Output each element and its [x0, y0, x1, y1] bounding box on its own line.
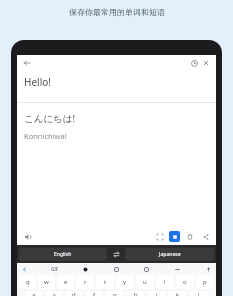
button[interactable]: r	[76, 275, 94, 289]
button[interactable]: English	[19, 248, 107, 261]
button[interactable]: j	[147, 291, 166, 296]
button[interactable]: g	[105, 291, 124, 296]
button[interactable]: i	[156, 275, 174, 289]
button[interactable]: History	[188, 57, 200, 69]
staticText: p	[203, 278, 207, 286]
button[interactable]: Voice input	[204, 265, 213, 274]
button[interactable]: Fullscreen	[153, 230, 166, 243]
staticText: f	[93, 291, 96, 296]
button[interactable]: o	[176, 275, 194, 289]
staticText: h	[134, 291, 138, 296]
staticText: Japanese	[159, 251, 181, 258]
staticText: Hello!	[24, 75, 51, 89]
staticText: 保存你最常用的单词和短语	[69, 7, 165, 17]
staticText: q	[26, 278, 30, 286]
button[interactable]: u	[136, 275, 154, 289]
button[interactable]: w	[38, 275, 55, 289]
button[interactable]: Share	[199, 230, 212, 243]
button[interactable]: Japanese	[125, 248, 214, 261]
button[interactable]: e	[57, 275, 74, 289]
staticText: o	[183, 278, 187, 286]
button[interactable]: q	[19, 275, 36, 289]
staticText: y	[123, 278, 127, 286]
staticText: i	[164, 278, 166, 286]
button[interactable]: GIF	[51, 266, 59, 272]
button[interactable]: h	[126, 291, 145, 296]
staticText: g	[113, 291, 117, 296]
button[interactable]: Translate	[112, 265, 121, 274]
staticText: u	[143, 278, 147, 286]
staticText: t	[104, 278, 107, 286]
staticText: j	[156, 291, 158, 296]
staticText: k	[176, 291, 180, 296]
button[interactable]: Expand	[20, 265, 29, 274]
button[interactable]: f	[85, 291, 103, 296]
button[interactable]: s	[45, 291, 63, 296]
button[interactable]: t	[96, 275, 114, 289]
button[interactable]: Listen	[21, 230, 34, 243]
button[interactable]: Save	[169, 231, 180, 242]
staticText: a	[32, 291, 36, 296]
button[interactable]: More	[173, 265, 182, 274]
staticText: l	[198, 291, 200, 296]
button[interactable]: Clear	[200, 57, 212, 69]
button[interactable]: k	[168, 291, 187, 296]
staticText: d	[72, 291, 76, 296]
button[interactable]: Clipboard	[142, 265, 151, 274]
staticText: s	[53, 291, 56, 296]
staticText: English	[54, 251, 72, 258]
button[interactable]: Back	[21, 57, 33, 69]
button[interactable]: Copy	[183, 230, 196, 243]
staticText: e	[64, 278, 68, 286]
staticText: Konnichiwa!	[24, 131, 67, 141]
staticText: w	[44, 278, 49, 286]
button[interactable]: Emoji	[81, 265, 90, 274]
button[interactable]: l	[189, 291, 208, 296]
button[interactable]: d	[65, 291, 83, 296]
button[interactable]: Swap languages	[107, 247, 125, 261]
button[interactable]: y	[116, 275, 134, 289]
button[interactable]: a	[25, 291, 43, 296]
staticText: r	[84, 278, 87, 286]
button[interactable]: p	[196, 275, 214, 289]
staticText: こんにちは!	[24, 112, 76, 125]
